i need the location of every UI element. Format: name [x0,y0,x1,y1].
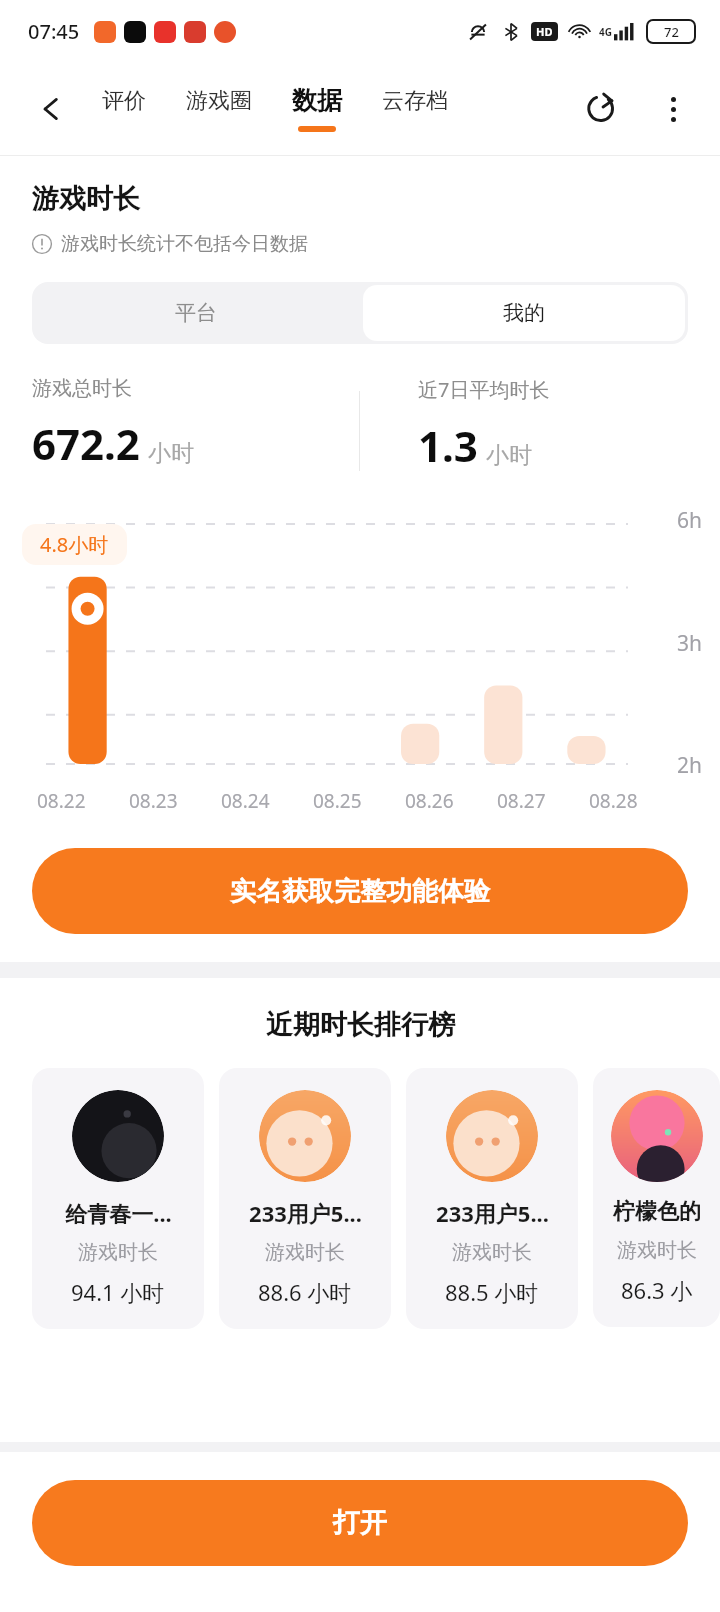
staticText: 233用户5... [436,1198,549,1228]
staticText: 1.3 [418,417,478,474]
staticText: 4G [599,25,612,39]
staticText: 07:45 [28,18,80,45]
staticText: 3h [677,629,702,658]
staticText: 小时 [148,439,194,468]
staticText: 游戏时长 [32,182,140,216]
staticText: 近期时长排行榜 [266,1008,455,1042]
staticText: 2h [677,751,702,780]
staticText: 打开 [333,1506,387,1540]
staticText: 游戏时长 [265,1240,345,1265]
staticText: 08.26 [405,788,454,814]
staticText: 08.23 [129,788,178,814]
staticText: 我的 [503,300,545,326]
staticText: 游戏时长 [452,1240,532,1265]
staticText: 云存档 [382,87,448,115]
button[interactable]: 打开 [32,1480,688,1566]
staticText: 实名获取完整功能体验 [230,875,490,908]
staticText: 给青春一... [65,1198,172,1228]
staticText: 4.8小时 [40,531,109,558]
staticText: 08.27 [497,788,546,814]
button[interactable]: Share [578,86,624,132]
button[interactable]: 平台 [32,282,360,344]
staticText: 评价 [102,87,146,115]
staticText: HD [536,24,553,39]
staticText: 数据 [292,85,342,116]
staticText: 游戏时长 [78,1240,158,1265]
button[interactable]: More options [650,86,696,132]
staticText: 游戏时长统计不包括今日数据 [61,232,308,256]
button[interactable]: 我的 [363,285,685,341]
button[interactable]: 233用户5... [219,1068,391,1329]
staticText: 86.3 小 [621,1275,693,1305]
staticText: 233用户5... [249,1198,362,1228]
button[interactable]: 实名获取完整功能体验 [32,848,688,934]
button[interactable]: Back [28,86,74,132]
staticText: 柠檬色的 [613,1198,701,1226]
staticText: 88.5 小时 [445,1277,539,1307]
button[interactable]: 游戏圈 [184,87,254,131]
staticText: 94.1 小时 [71,1277,165,1307]
button[interactable]: 云存档 [380,87,450,131]
button[interactable]: 数据 [290,85,344,132]
staticText: 小时 [486,441,532,470]
staticText: 72 [664,23,679,41]
staticText: 平台 [175,300,217,326]
staticText: 88.6 小时 [258,1277,352,1307]
staticText: 游戏时长 [617,1238,697,1263]
button[interactable]: 评价 [100,87,148,131]
button[interactable]: 柠檬色的 [593,1068,720,1327]
button[interactable]: 给青春一... [32,1068,204,1329]
staticText: 08.28 [589,788,638,814]
staticText: 游戏圈 [186,87,252,115]
staticText: 08.22 [37,788,86,814]
button[interactable]: 233用户5... [406,1068,578,1329]
staticText: 672.2 [32,415,140,472]
staticText: 6h [677,506,702,535]
staticText: 08.25 [313,788,362,814]
staticText: 08.24 [221,788,270,814]
staticText: 游戏总时长 [32,376,132,401]
staticText: 近7日平均时长 [418,376,550,403]
